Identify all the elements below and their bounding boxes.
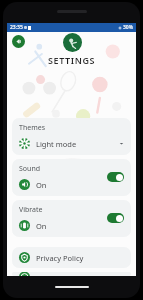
button[interactable]: Sound: [12, 159, 131, 196]
button[interactable]: Privacy Policy: [12, 247, 131, 268]
button[interactable]: Themes: [12, 118, 131, 155]
button[interactable]: Toggle on: [107, 172, 124, 182]
staticText: On: [36, 180, 47, 190]
staticText: 30%: [123, 24, 133, 31]
staticText: Light mode: [36, 139, 77, 149]
staticText: Privacy Policy: [36, 253, 84, 263]
staticText: 23:35: [10, 24, 23, 31]
staticText: Vibrate: [19, 205, 43, 215]
button[interactable]: Back: [12, 35, 25, 48]
staticText: Sound: [19, 164, 41, 174]
button[interactable]: User Agreement: [12, 272, 131, 276]
staticText: On: [36, 221, 47, 231]
button[interactable]: Toggle on: [107, 213, 124, 223]
staticText: Themes: [19, 123, 46, 133]
staticText: SETTINGS: [48, 54, 96, 66]
button[interactable]: Vibrate: [12, 200, 131, 237]
